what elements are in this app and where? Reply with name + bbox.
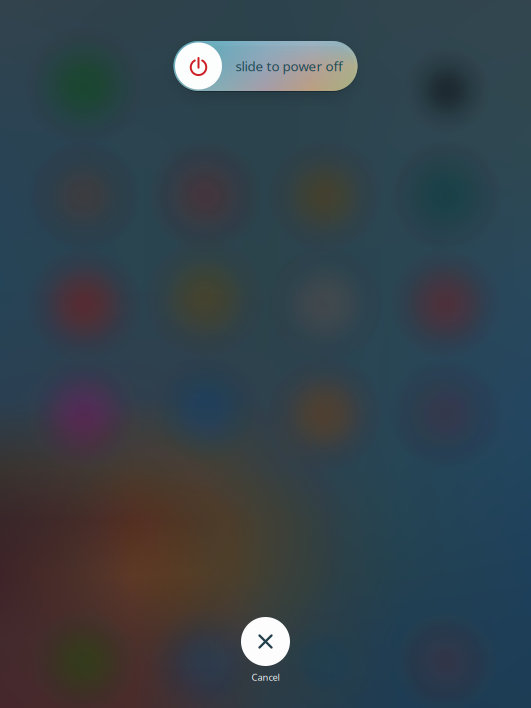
button[interactable]: Cancel xyxy=(241,617,290,683)
button[interactable]: slide to power off xyxy=(173,41,357,91)
staticText: Cancel xyxy=(251,671,279,683)
staticText: slide to power off xyxy=(235,57,342,75)
